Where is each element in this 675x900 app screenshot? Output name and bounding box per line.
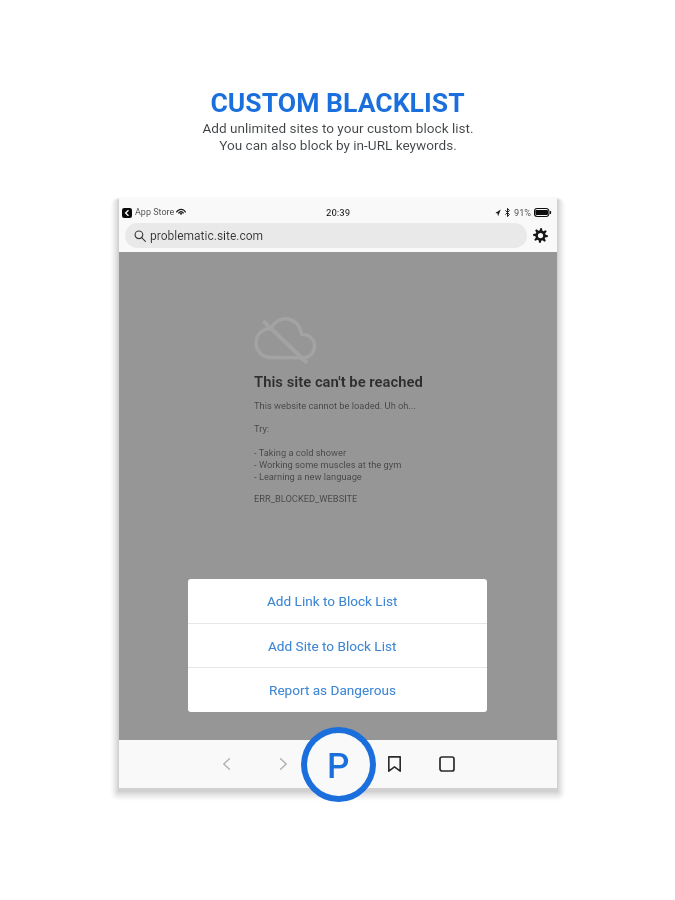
button[interactable]: Add Link to Block List: [188, 579, 487, 623]
staticText: Report as Dangerous: [269, 682, 396, 698]
staticText: problematic.site.com: [150, 229, 264, 243]
button[interactable]: Pluckeye blocker menu: [301, 727, 376, 802]
staticText: Try:: [254, 423, 270, 434]
staticText: App Store: [135, 207, 175, 218]
staticText: 20:39: [326, 207, 351, 218]
staticText: This website cannot be loaded. Uh oh...: [254, 400, 416, 411]
button[interactable]: Tabs: [434, 751, 460, 777]
button[interactable]: Report as Dangerous: [188, 668, 487, 712]
staticText: This site can't be reached: [254, 373, 423, 390]
button[interactable]: Bookmarks: [381, 751, 407, 777]
button[interactable]: problematic.site.com: [125, 223, 527, 248]
button[interactable]: Forward: [270, 751, 296, 777]
staticText: P: [327, 746, 350, 787]
staticText: CUSTOM BLACKLIST: [210, 87, 465, 118]
staticText: Add unlimited sites to your custom block…: [202, 120, 474, 153]
staticText: - Taking a cold shower - Working some mu…: [254, 447, 402, 482]
button[interactable]: Back: [213, 751, 239, 777]
staticText: Add Link to Block List: [267, 593, 398, 609]
staticText: 91%: [514, 207, 532, 218]
staticText: ERR_BLOCKED_WEBSITE: [254, 493, 358, 504]
button[interactable]: Settings: [529, 224, 551, 246]
button[interactable]: Add Site to Block List: [188, 624, 487, 667]
staticText: Add Site to Block List: [268, 638, 397, 654]
